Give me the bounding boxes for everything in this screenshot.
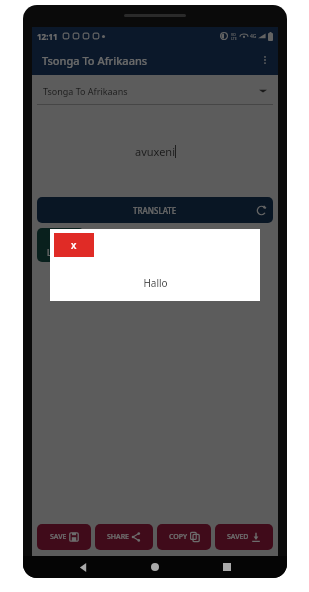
button[interactable]: TRANSLATE (37, 197, 273, 223)
button[interactable]: LISTEN (37, 228, 84, 262)
staticText: Hallo (143, 276, 168, 290)
staticText: avuxeni (135, 144, 175, 159)
staticText: SAVED (227, 532, 249, 542)
staticText: TRANSLATE (133, 205, 177, 216)
staticText: Hallo (142, 271, 168, 285)
staticText: Tsonga To Afrikaans (42, 53, 148, 68)
button[interactable]: SHARE (95, 524, 153, 550)
button[interactable]: avuxeni (37, 105, 273, 197)
button[interactable]: Back (71, 556, 95, 578)
staticText: 4G (250, 33, 257, 40)
staticText: COPY (169, 532, 188, 542)
button[interactable]: Home (143, 556, 167, 578)
staticText: VO LTE (231, 32, 237, 41)
button[interactable]: SAVED (215, 524, 273, 550)
staticText: SHARE (107, 532, 129, 542)
button[interactable]: COPY (157, 524, 211, 550)
button[interactable]: Tsonga To Afrikaans (37, 80, 273, 102)
staticText: LISTEN (47, 247, 74, 258)
button[interactable]: X (54, 233, 94, 257)
button[interactable]: Recents (215, 556, 239, 578)
button[interactable]: SAVE (37, 524, 91, 550)
staticText: Tsonga To Afrikaans (43, 85, 128, 97)
staticText: SAVE (50, 532, 67, 542)
button[interactable]: More options (252, 47, 278, 73)
staticText: X (71, 240, 77, 251)
staticText: 12:11 (37, 31, 58, 42)
